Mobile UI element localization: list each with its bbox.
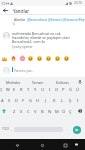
button[interactable]: Reaction 6 [54,55,61,62]
staticText: Q [0,87,3,93]
button[interactable]: Switch keyboard [71,139,82,150]
button[interactable]: Shift [0,107,8,115]
staticText: Tamam [32,80,44,84]
staticText: C [27,109,30,115]
staticText: @bonushost @kirmizi @hexoronPeys [27,17,85,22]
staticText: Merhaba [6,80,20,84]
button[interactable]: Voice input [75,77,85,86]
button[interactable]: Ç [67,106,74,118]
button[interactable]: Ö [60,106,67,118]
button[interactable]: İ [74,95,82,107]
button[interactable]: Ü [74,84,81,96]
staticText: Ş [69,98,72,104]
button[interactable]: L [58,95,66,107]
staticText: Ç [69,109,72,115]
staticText: İ [77,98,79,104]
staticText: S [8,98,11,104]
staticText: 20:16 [74,1,83,5]
button[interactable]: ?123 [0,123,11,134]
button[interactable]: O [53,84,60,96]
staticText: Yanıtını yaz... [14,68,34,72]
staticText: G [29,98,32,104]
button[interactable]: Back [11,139,23,150]
staticText: Ö [62,109,66,115]
staticText: F [22,98,25,104]
staticText: mehmetabi Bonushost ve cok hazırdırlar, … [12,31,74,44]
button[interactable]: Q [0,84,4,96]
staticText: O [55,87,59,93]
staticText: L [61,98,64,104]
button[interactable]: Kullanıcı [50,77,75,86]
button[interactable]: A [0,95,6,107]
button[interactable]: U [39,84,46,96]
button[interactable]: Reaction 0 [1,55,8,62]
staticText: E [13,87,16,93]
staticText: U [41,87,44,93]
button[interactable]: B [39,106,46,118]
button[interactable]: S [6,95,13,107]
button[interactable]: E [11,84,18,96]
button[interactable]: Merhaba [0,77,25,86]
staticText: M [55,109,59,115]
staticText: Ü [76,87,79,93]
button[interactable]: Ş [66,95,74,107]
button[interactable]: N [46,106,53,118]
button[interactable]: Tamam [25,77,50,86]
button[interactable]: Reaction 3 [27,55,34,62]
button[interactable]: W [4,84,11,96]
staticText: D [15,98,18,104]
button[interactable]: R [18,84,25,96]
staticText: Çeviriyi göster [12,45,33,49]
button[interactable]: J [42,95,50,107]
staticText: T [27,87,30,93]
staticText: K [53,98,56,104]
button[interactable]: Z [10,106,18,118]
button[interactable]: Y [32,84,39,96]
button[interactable]: Reaction 1 [10,55,17,62]
button[interactable]: K [50,95,58,107]
button[interactable]: Reaction 7 [63,55,70,62]
staticText: V [34,109,37,115]
button[interactable]: Home [36,139,48,150]
button[interactable]: G [27,95,34,107]
staticText: R [20,87,23,93]
staticText: J [45,98,47,104]
staticText: Alanlar [14,17,27,22]
button[interactable]: M [53,106,60,118]
button[interactable]: I [46,84,53,96]
staticText: . [67,126,68,131]
staticText: W [6,87,10,93]
button[interactable]: Send [73,126,81,134]
button[interactable]: Reaction 2 [19,55,26,62]
button[interactable]: Backspace [76,107,84,115]
button[interactable]: P [60,84,67,96]
staticText: B [41,109,44,115]
button[interactable]: X [18,106,25,118]
button[interactable]: Back [1,6,10,15]
button[interactable]: H [34,95,42,107]
staticText: P [62,87,65,93]
staticText: Yanıtlar [13,8,30,14]
staticText: Y [34,87,37,93]
staticText: Z [13,109,16,115]
staticText: , [11,126,12,131]
staticText: ?123 [2,127,9,131]
button[interactable]: Recent apps [59,139,71,150]
staticText: Kullanıcı [56,80,69,84]
staticText: H [36,98,40,104]
button[interactable]: C [25,106,32,118]
button[interactable]: Reaction 5 [45,55,52,62]
staticText: Ğ [69,87,72,93]
button[interactable]: Ğ [67,84,74,96]
button[interactable]: Reaction 4 [36,55,43,62]
button[interactable]: F [20,95,27,107]
staticText: X [20,109,23,115]
staticText: A [1,98,4,104]
button[interactable]: V [32,106,39,118]
staticText: N [48,109,52,115]
button[interactable]: T [25,84,32,96]
staticText: I [49,87,51,93]
button[interactable]: D [13,95,20,107]
